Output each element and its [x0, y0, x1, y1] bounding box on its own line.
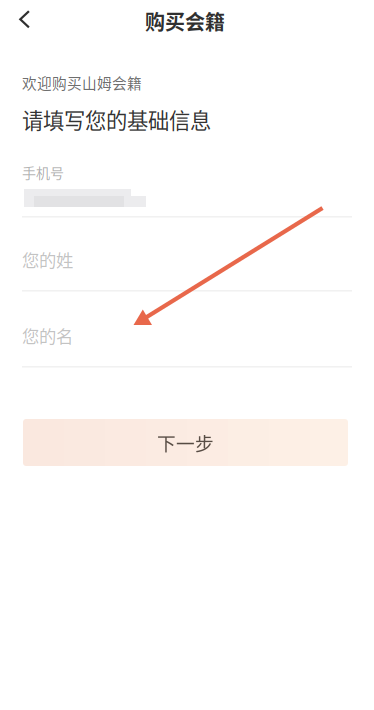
- button[interactable]: 下一步: [23, 419, 348, 466]
- staticText: 请填写您的基础信息: [22, 104, 211, 135]
- button[interactable]: 您的姓: [22, 217, 352, 290]
- button[interactable]: 手机号: [22, 145, 352, 217]
- button[interactable]: 返回: [12, 3, 56, 37]
- staticText: 手机号: [22, 162, 64, 182]
- staticText: 您的名: [22, 323, 73, 348]
- staticText: 您的姓: [22, 247, 73, 272]
- staticText: 欢迎购买山姆会籍: [22, 72, 142, 93]
- staticText: 购买会籍: [145, 6, 225, 35]
- staticText: 下一步: [157, 429, 214, 456]
- button[interactable]: 您的名: [22, 291, 352, 366]
